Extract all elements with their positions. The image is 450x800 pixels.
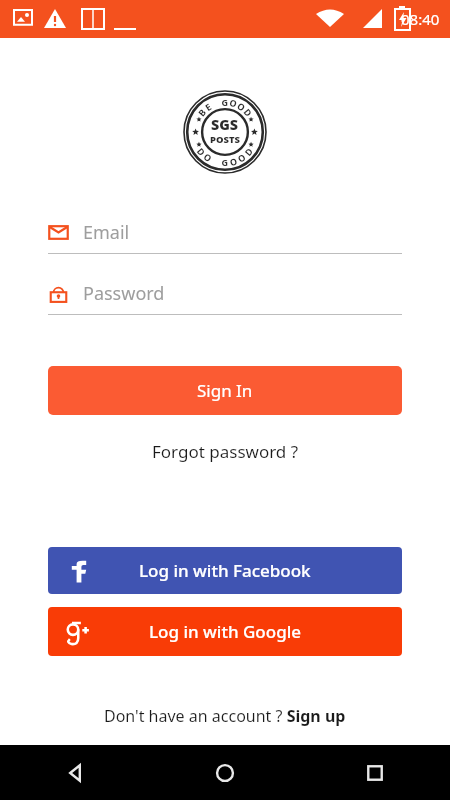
button[interactable]: Log in with Facebook	[48, 547, 402, 594]
other: Password	[48, 283, 69, 304]
staticText: Forgot password ?	[152, 440, 299, 463]
other: Email	[48, 222, 69, 243]
staticText: Sign In	[197, 379, 253, 402]
staticText: Log in with Facebook	[139, 559, 311, 582]
staticText: Password	[83, 281, 165, 306]
staticText: Don't have an account ? Sign up	[104, 705, 346, 727]
staticText: Email	[83, 220, 130, 245]
staticText: 08:40	[401, 9, 440, 29]
button[interactable]: Password	[48, 276, 402, 315]
button[interactable]: Email	[48, 215, 402, 254]
button[interactable]: Forgot password ?	[142, 436, 309, 467]
button[interactable]: Sign In	[48, 366, 402, 415]
staticText: Log in with Google	[149, 620, 302, 643]
button[interactable]: Log in with Google	[48, 607, 402, 656]
button[interactable]: Recent apps	[300, 745, 450, 800]
button[interactable]: Home	[150, 745, 300, 800]
button[interactable]: Don't have an account ? Sign up	[94, 701, 356, 731]
button[interactable]: Back	[0, 745, 150, 800]
